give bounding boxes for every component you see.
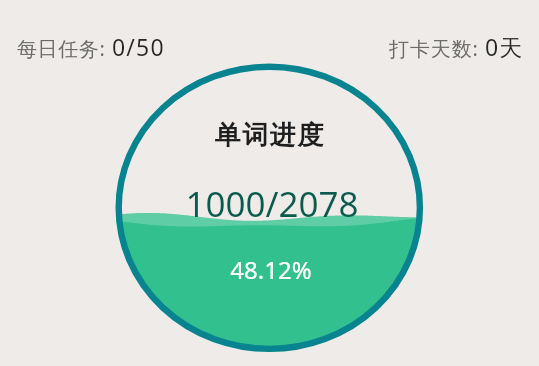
staticText: 打卡天数:	[389, 35, 485, 62]
staticText: 每日任务:	[17, 35, 112, 62]
staticText: 48.12%	[230, 253, 312, 286]
staticText: 0天	[485, 31, 524, 62]
button[interactable]: 单词进度 1000/2078 48.12%	[115, 64, 423, 353]
button[interactable]: 打卡天数:	[389, 31, 524, 62]
staticText: 单词进度	[214, 119, 324, 152]
staticText: 1000/2078	[185, 180, 359, 228]
button[interactable]: 每日任务:	[17, 31, 165, 62]
staticText: 0/50	[112, 31, 165, 62]
